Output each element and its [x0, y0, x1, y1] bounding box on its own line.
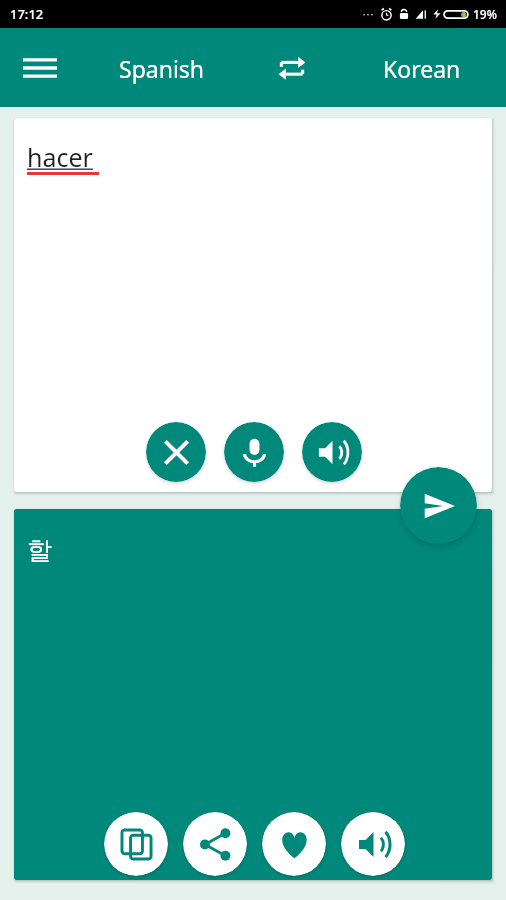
staticText: Korean: [383, 53, 461, 84]
staticText: Spanish: [119, 53, 205, 84]
button[interactable]: Listen: [341, 812, 405, 876]
staticText: hacer: [27, 140, 93, 174]
button[interactable]: Listen: [302, 422, 362, 482]
staticText: 17:12: [10, 5, 44, 23]
button[interactable]: Clear: [146, 422, 206, 482]
button[interactable]: Favorite: [262, 812, 326, 876]
button[interactable]: Voice input: [224, 422, 284, 482]
button[interactable]: Korean: [352, 38, 492, 98]
button[interactable]: Spanish: [92, 38, 232, 98]
button[interactable]: Menu: [14, 42, 66, 94]
button[interactable]: Share: [183, 812, 247, 876]
button[interactable]: Copy: [104, 812, 168, 876]
button[interactable]: Translate: [400, 467, 477, 544]
staticText: 할: [27, 535, 52, 566]
staticText: 19%: [473, 6, 497, 22]
button[interactable]: Swap languages: [266, 42, 318, 94]
